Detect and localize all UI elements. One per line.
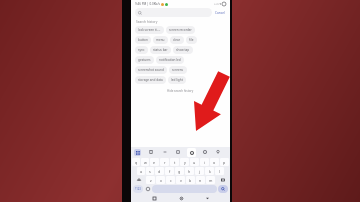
button[interactable]: t [170,158,179,166]
staticText: notification led [159,58,181,62]
button[interactable]: sync [135,46,148,54]
button[interactable]: show tap [173,46,193,54]
staticText: ⌁ ▫ ▾ [214,2,221,6]
button[interactable]: i [200,158,209,166]
staticText: q [135,160,138,165]
staticText: z [150,178,152,183]
button[interactable]: Clipboard [147,148,155,156]
staticText: menu [156,38,165,42]
staticText: b [189,178,192,183]
staticText: p [223,160,226,165]
staticText: v [180,178,182,183]
button[interactable]: Recents [151,195,157,201]
staticText: k [209,169,211,174]
button[interactable]: screenshot sound [135,66,167,74]
button[interactable]: c [166,176,175,184]
staticText: l [219,169,220,174]
button[interactable]: Home [178,195,184,201]
staticText: screen recorder [169,28,192,32]
staticText: clear [173,38,181,42]
button[interactable]: Emoji [144,185,151,193]
staticText: w [144,160,147,165]
button[interactable]: Emoji [201,148,209,156]
staticText: sync [138,48,145,52]
button[interactable]: m [206,176,215,184]
button[interactable]: d [155,167,164,175]
button[interactable]: button [135,36,151,44]
button[interactable]: Back [204,195,210,201]
staticText: button [138,38,148,42]
button[interactable]: z [146,176,155,184]
staticText: t [174,160,176,165]
button[interactable]: menu [153,36,168,44]
button[interactable]: Cancel [214,10,226,16]
staticText: x [160,178,162,183]
staticText: i [204,160,205,165]
button[interactable]: screens [169,66,187,74]
button[interactable] [135,8,212,17]
staticText: storage and data [138,78,163,82]
staticText: r [164,160,166,165]
staticText: c [170,178,172,183]
button[interactable]: e [150,158,159,166]
button[interactable]: Search [218,185,228,193]
button[interactable]: w [141,158,149,166]
button[interactable]: l [215,167,224,175]
button[interactable]: led light [168,76,186,84]
staticText: s [149,169,151,174]
button[interactable]: r [160,158,169,166]
staticText: m [209,178,213,183]
staticText: Search history [136,20,158,24]
staticText: n [199,178,202,183]
button[interactable]: Shift [132,176,145,184]
staticText: o [213,160,216,165]
staticText: gestures [138,58,151,62]
staticText: e [153,160,156,165]
button[interactable]: a [137,167,145,175]
button[interactable]: f [165,167,174,175]
button[interactable]: storage and data [135,76,166,84]
button[interactable]: ?123 [133,185,143,193]
button[interactable]: file [186,36,197,44]
staticText: file [189,38,194,42]
button[interactable]: o [210,158,219,166]
staticText: g [178,169,181,174]
staticText: d [158,169,161,174]
button[interactable]: g [175,167,184,175]
button[interactable]: k [205,167,214,175]
staticText: show tap [176,48,190,52]
staticText: h [188,169,191,174]
button[interactable]: clear [170,36,184,44]
button[interactable]: Settings [187,148,196,157]
button[interactable]: u [190,158,199,166]
button[interactable]: p [220,158,229,166]
button[interactable]: b [186,176,195,184]
staticText: Hide search history [167,89,194,93]
staticText: screenshot sound [138,68,164,72]
button[interactable]: Toolbar menu [134,149,141,156]
button[interactable]: Theme [174,148,182,156]
button[interactable]: q [132,158,140,166]
button[interactable]: n [196,176,205,184]
staticText: screens [172,68,184,72]
staticText: j [199,169,200,174]
button[interactable]: h [185,167,194,175]
staticText: led light [171,78,183,82]
button[interactable]: y [180,158,189,166]
button[interactable]: j [195,167,204,175]
button[interactable]: screen recorder [166,26,195,34]
button[interactable]: x [156,176,165,184]
button[interactable]: Voice [214,148,222,156]
staticText: y [184,160,186,165]
button[interactable]: Backspace [216,176,229,184]
button[interactable]: gestures [135,56,154,64]
button[interactable]: Translate [161,148,169,156]
staticText: 9:46 PM | 0.0Kb/s [135,2,160,6]
button[interactable]: lock screen ti-... [135,26,164,34]
button[interactable]: v [176,176,185,184]
button[interactable]: s [146,167,154,175]
button[interactable]: notification led [156,56,184,64]
button[interactable]: status bar [150,46,171,54]
staticText: ?123 [135,187,141,191]
